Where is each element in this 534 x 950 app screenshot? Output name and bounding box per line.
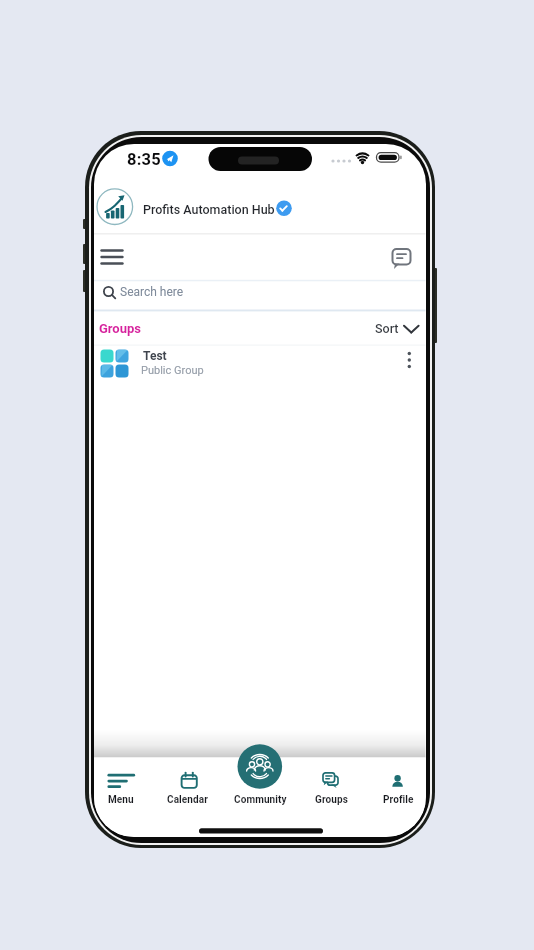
button[interactable]: Search here: [94, 144, 158, 166]
button[interactable]: [302, 790, 358, 814]
button[interactable]: Sort: [94, 144, 118, 166]
staticText: Calendar: [167, 794, 209, 806]
staticText: Menu: [108, 794, 134, 806]
button[interactable]: [397, 347, 421, 373]
staticText: Sort: [375, 321, 399, 336]
button[interactable]: [373, 790, 423, 814]
button[interactable]: [237, 743, 282, 789]
button[interactable]: [160, 790, 216, 814]
button[interactable]: [94, 345, 394, 376]
button[interactable]: [96, 244, 128, 270]
staticText: 8:35: [127, 150, 161, 169]
staticText: Search here: [120, 285, 184, 299]
button[interactable]: [94, 790, 150, 814]
staticText: Groups: [315, 794, 348, 806]
staticText: Test: [143, 349, 167, 363]
staticText: Community: [234, 794, 287, 806]
staticText: Public Group: [141, 364, 204, 377]
staticText: Groups: [99, 321, 142, 336]
staticText: Profits Automation Hub: [143, 202, 275, 217]
button[interactable]: [387, 244, 416, 272]
staticText: Profile: [383, 794, 414, 806]
